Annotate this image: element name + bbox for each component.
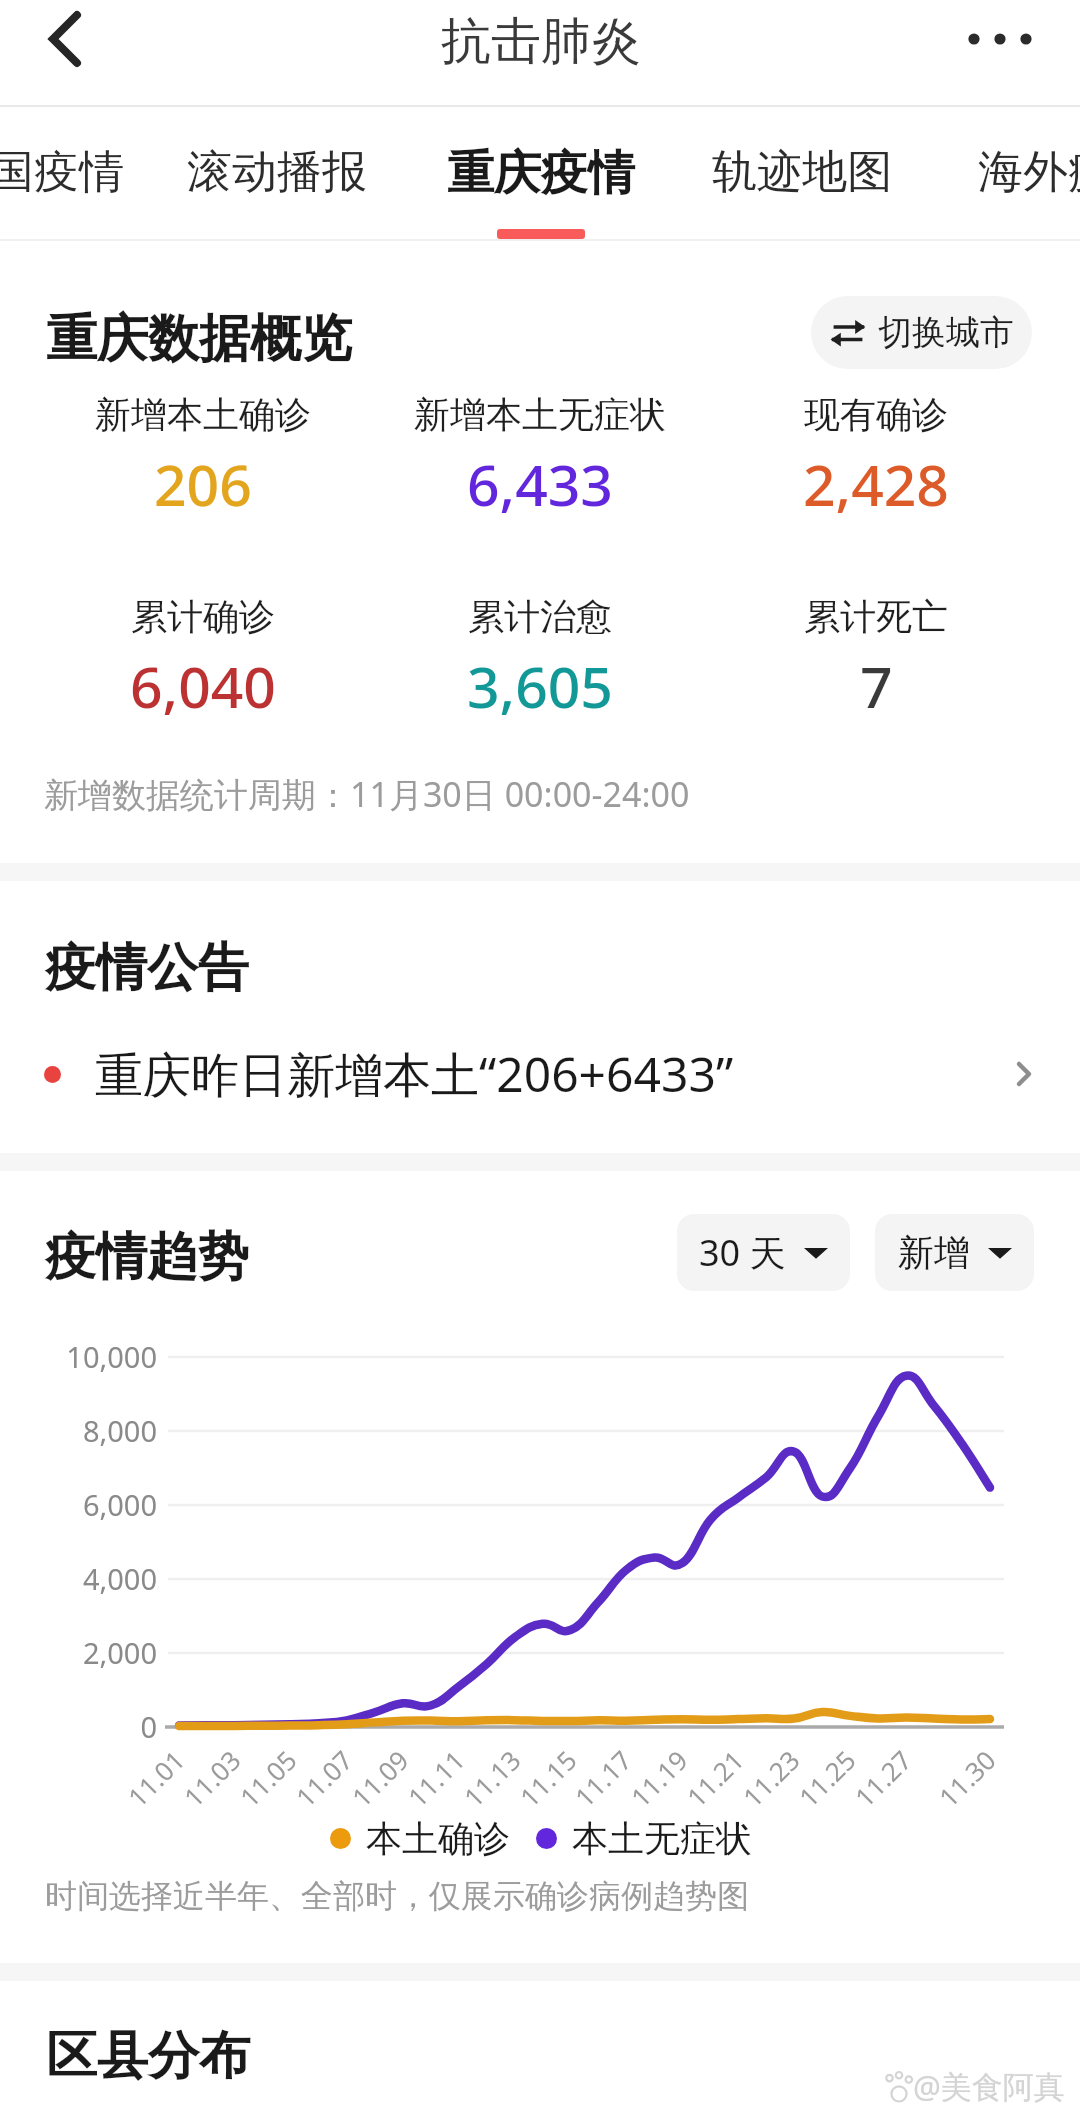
button[interactable]: 切换城市 <box>811 296 1032 369</box>
staticText: 时间选择近半年、全部时，仅展示确诊病例趋势图 <box>45 1876 749 1916</box>
staticText: 抗击肺炎 <box>441 10 641 73</box>
button[interactable]: 重庆疫情 <box>412 107 670 240</box>
staticText: 新增本土无症状 <box>414 392 666 437</box>
staticText: 重庆昨日新增本土“206+6433” <box>95 1041 734 1107</box>
staticText: 累计死亡 <box>804 594 948 639</box>
staticText: 11.05 <box>232 1742 304 1814</box>
staticText: 3,605 <box>467 647 613 725</box>
staticText: 6,000 <box>0 1485 157 1524</box>
staticText: 切换城市 <box>878 311 1014 354</box>
button[interactable]: Back <box>10 0 116 100</box>
staticText: 新增数据统计周期：11月30日 00:00-24:00 <box>44 771 690 817</box>
staticText: 海外疫情 <box>978 144 1080 201</box>
staticText: 206 <box>154 445 252 523</box>
button[interactable]: 新增 <box>875 1214 1034 1291</box>
staticText: 11.03 <box>176 1742 248 1814</box>
staticText: 2,428 <box>803 445 949 523</box>
staticText: 11.07 <box>288 1742 360 1814</box>
staticText: 11.09 <box>344 1742 416 1814</box>
staticText: 11.13 <box>456 1742 528 1814</box>
staticText: 2,000 <box>0 1633 157 1672</box>
staticText: 新增 <box>898 1230 970 1275</box>
staticText: @美食阿真 <box>913 2065 1065 2107</box>
staticText: 11.01 <box>120 1742 192 1814</box>
button[interactable]: 轨迹地图 <box>673 107 931 240</box>
staticText: 疫情公告 <box>45 936 249 1000</box>
button[interactable]: 海外疫情 <box>939 107 1080 240</box>
staticText: 30 天 <box>699 1228 786 1277</box>
staticText: 7 <box>860 647 893 725</box>
button[interactable]: 重庆昨日新增本土“206+6433” <box>0 1024 1080 1124</box>
staticText: 4,000 <box>0 1559 157 1598</box>
button[interactable]: 30 天 <box>677 1214 850 1291</box>
staticText: 轨迹地图 <box>712 144 892 201</box>
staticText: 10,000 <box>0 1337 157 1376</box>
staticText: 11.19 <box>623 1742 695 1814</box>
staticText: 累计治愈 <box>468 594 612 639</box>
staticText: 11.21 <box>679 1742 751 1814</box>
staticText: 累计确诊 <box>131 594 275 639</box>
staticText: 8,000 <box>0 1411 157 1450</box>
button[interactable]: 国疫情 <box>0 107 162 240</box>
staticText: 国疫情 <box>0 144 124 201</box>
staticText: 11.25 <box>791 1742 863 1814</box>
staticText: 本土无症状 <box>572 1816 752 1861</box>
staticText: 11.23 <box>735 1742 807 1814</box>
staticText: 11.27 <box>847 1742 919 1814</box>
staticText: 0 <box>0 1707 157 1746</box>
staticText: 11.15 <box>512 1742 584 1814</box>
staticText: 新增本土确诊 <box>95 392 311 437</box>
staticText: 11.17 <box>567 1742 639 1814</box>
button[interactable]: 本土确诊 <box>330 1813 752 1863</box>
button[interactable]: More options <box>950 0 1070 100</box>
staticText: 6,040 <box>130 647 276 725</box>
staticText: 6,433 <box>467 445 613 523</box>
staticText: 疫情趋势 <box>45 1225 249 1289</box>
staticText: 11.11 <box>400 1742 472 1814</box>
staticText: 现有确诊 <box>804 392 948 437</box>
staticText: 重庆数据概览 <box>46 307 352 371</box>
staticText: 11.30 <box>931 1742 1003 1814</box>
staticText: 本土确诊 <box>366 1816 510 1861</box>
button[interactable]: 滚动播报 <box>148 107 406 240</box>
staticText: 重庆疫情 <box>447 144 635 203</box>
staticText: 滚动播报 <box>187 144 367 201</box>
staticText: 区县分布 <box>46 2024 250 2088</box>
